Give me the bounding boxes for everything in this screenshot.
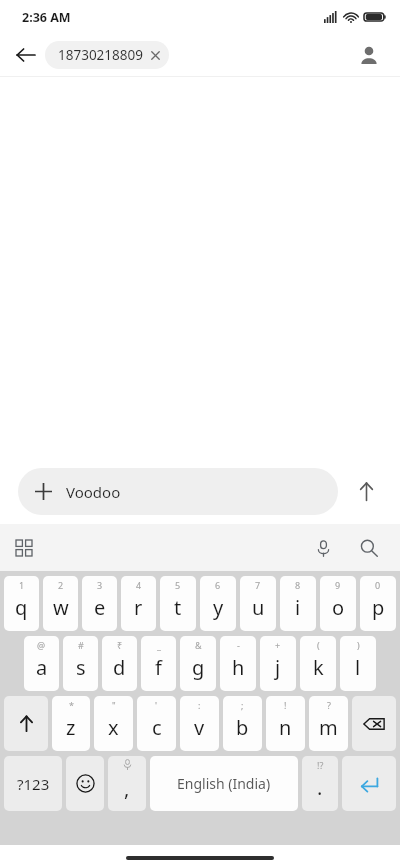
staticText: l xyxy=(355,654,361,681)
button[interactable]: 0 xyxy=(360,576,396,631)
button[interactable]: ) xyxy=(340,636,376,691)
button[interactable]: 1 xyxy=(4,576,39,631)
button[interactable]: # xyxy=(63,636,98,691)
staticText: m xyxy=(319,714,338,741)
staticText: & xyxy=(195,639,202,651)
button[interactable]: 4 xyxy=(121,576,156,631)
staticText: 8 xyxy=(295,579,301,591)
staticText: 2 xyxy=(58,579,64,591)
staticText: 6 xyxy=(215,579,221,591)
staticText: English (India) xyxy=(177,774,271,793)
staticText: k xyxy=(313,654,324,681)
staticText: 7 xyxy=(255,579,261,591)
staticText: ! xyxy=(284,699,287,711)
staticText: 1 xyxy=(19,579,25,591)
button[interactable]: ? xyxy=(309,696,348,751)
staticText: + xyxy=(275,639,281,651)
staticText: 2:36 AM xyxy=(22,9,71,26)
button[interactable]: !? xyxy=(302,756,338,811)
button[interactable]: Back xyxy=(8,37,44,73)
staticText: n xyxy=(279,714,292,741)
staticText: c xyxy=(152,714,162,741)
button[interactable]: ₹ xyxy=(102,636,137,691)
staticText: 18730218809 xyxy=(58,46,143,64)
button[interactable]: English (India) xyxy=(150,756,298,811)
staticText: v xyxy=(194,714,205,741)
staticText: x xyxy=(108,714,119,741)
button[interactable]: 2 xyxy=(43,576,78,631)
staticText: h xyxy=(232,654,245,681)
staticText: Voodoo xyxy=(66,482,121,502)
button[interactable]: Emoji xyxy=(66,756,104,811)
staticText: _ xyxy=(157,639,161,651)
staticText: - xyxy=(237,639,240,651)
button[interactable]: 7 xyxy=(240,576,276,631)
staticText: q xyxy=(15,594,28,621)
staticText: i xyxy=(295,594,301,621)
staticText: b xyxy=(236,714,249,741)
staticText: * xyxy=(69,699,74,711)
staticText: e xyxy=(94,594,106,621)
staticText: o xyxy=(332,594,345,621)
staticText: !? xyxy=(317,759,324,771)
button[interactable]: ?123 xyxy=(4,756,62,811)
button[interactable]: 9 xyxy=(320,576,356,631)
staticText: p xyxy=(372,594,385,621)
staticText: 4 xyxy=(136,579,142,591)
staticText: ? xyxy=(327,699,331,711)
staticText: ) xyxy=(357,639,360,651)
button[interactable]: 6 xyxy=(200,576,236,631)
staticText: ' xyxy=(155,699,158,711)
button[interactable]: 3 xyxy=(82,576,117,631)
button[interactable]: Contact xyxy=(352,38,386,72)
staticText: 3 xyxy=(97,579,103,591)
button[interactable]: , xyxy=(108,756,146,811)
button[interactable]: 5 xyxy=(160,576,196,631)
button[interactable]: _ xyxy=(141,636,176,691)
button[interactable]: + xyxy=(260,636,296,691)
staticText: r xyxy=(134,594,143,621)
staticText: 9 xyxy=(335,579,341,591)
button[interactable]: @ xyxy=(24,636,59,691)
staticText: ( xyxy=(317,639,320,651)
staticText: @ xyxy=(37,639,46,651)
staticText: d xyxy=(113,654,126,681)
staticText: u xyxy=(252,594,265,621)
button[interactable]: " xyxy=(94,696,133,751)
button[interactable]: Send xyxy=(346,471,386,511)
staticText: ?123 xyxy=(17,774,50,794)
button[interactable]: Voice input xyxy=(306,531,340,565)
staticText: s xyxy=(76,654,86,681)
button[interactable]: Shift xyxy=(4,696,48,751)
staticText: ; xyxy=(241,699,244,711)
staticText: t xyxy=(174,594,182,621)
button[interactable]: Enter xyxy=(342,756,396,811)
button[interactable]: 18730218809 xyxy=(45,41,169,69)
button[interactable]: ! xyxy=(266,696,305,751)
button[interactable]: - xyxy=(220,636,256,691)
staticText: ₹ xyxy=(117,639,123,651)
button[interactable]: ' xyxy=(137,696,176,751)
staticText: w xyxy=(53,594,69,621)
button[interactable]: Search xyxy=(352,531,386,565)
button[interactable]: Voodoo xyxy=(18,468,338,515)
staticText: y xyxy=(213,594,224,621)
button[interactable]: 8 xyxy=(280,576,316,631)
button[interactable]: & xyxy=(180,636,216,691)
staticText: : xyxy=(198,699,201,711)
staticText: a xyxy=(36,654,48,681)
button[interactable]: Backspace xyxy=(352,696,396,751)
staticText: 0 xyxy=(375,579,381,591)
staticText: g xyxy=(192,654,205,681)
button[interactable]: ( xyxy=(300,636,336,691)
button[interactable]: * xyxy=(52,696,90,751)
staticText: . xyxy=(317,774,323,801)
staticText: j xyxy=(275,654,281,681)
button[interactable]: : xyxy=(180,696,219,751)
button[interactable]: ; xyxy=(223,696,262,751)
button[interactable]: Clipboard xyxy=(8,532,40,564)
staticText: f xyxy=(155,654,162,681)
staticText: , xyxy=(124,775,130,802)
staticText: # xyxy=(78,639,84,651)
staticText: " xyxy=(112,699,116,711)
